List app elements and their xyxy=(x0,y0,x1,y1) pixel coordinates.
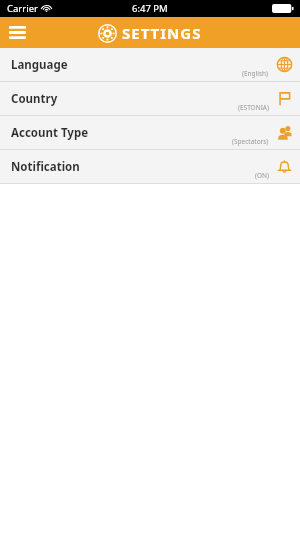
staticText: (ESTONIA) xyxy=(238,103,269,112)
button[interactable]: Menu xyxy=(0,17,34,48)
staticText: Account Type xyxy=(11,125,89,141)
staticText: Language xyxy=(11,57,68,73)
staticText: (English) xyxy=(242,69,269,78)
staticText: 6:47 PM xyxy=(132,2,168,15)
button[interactable]: Notification xyxy=(0,150,300,183)
staticText: Country xyxy=(11,91,58,107)
staticText: Carrier xyxy=(7,2,38,15)
staticText: (ON) xyxy=(255,171,269,180)
staticText: SETTINGS xyxy=(122,23,202,43)
button[interactable]: Country xyxy=(0,82,300,115)
staticText: (Spectators) xyxy=(232,137,269,146)
button[interactable]: Account Type xyxy=(0,116,300,149)
staticText: Notification xyxy=(11,159,80,175)
button[interactable]: Language xyxy=(0,48,300,81)
